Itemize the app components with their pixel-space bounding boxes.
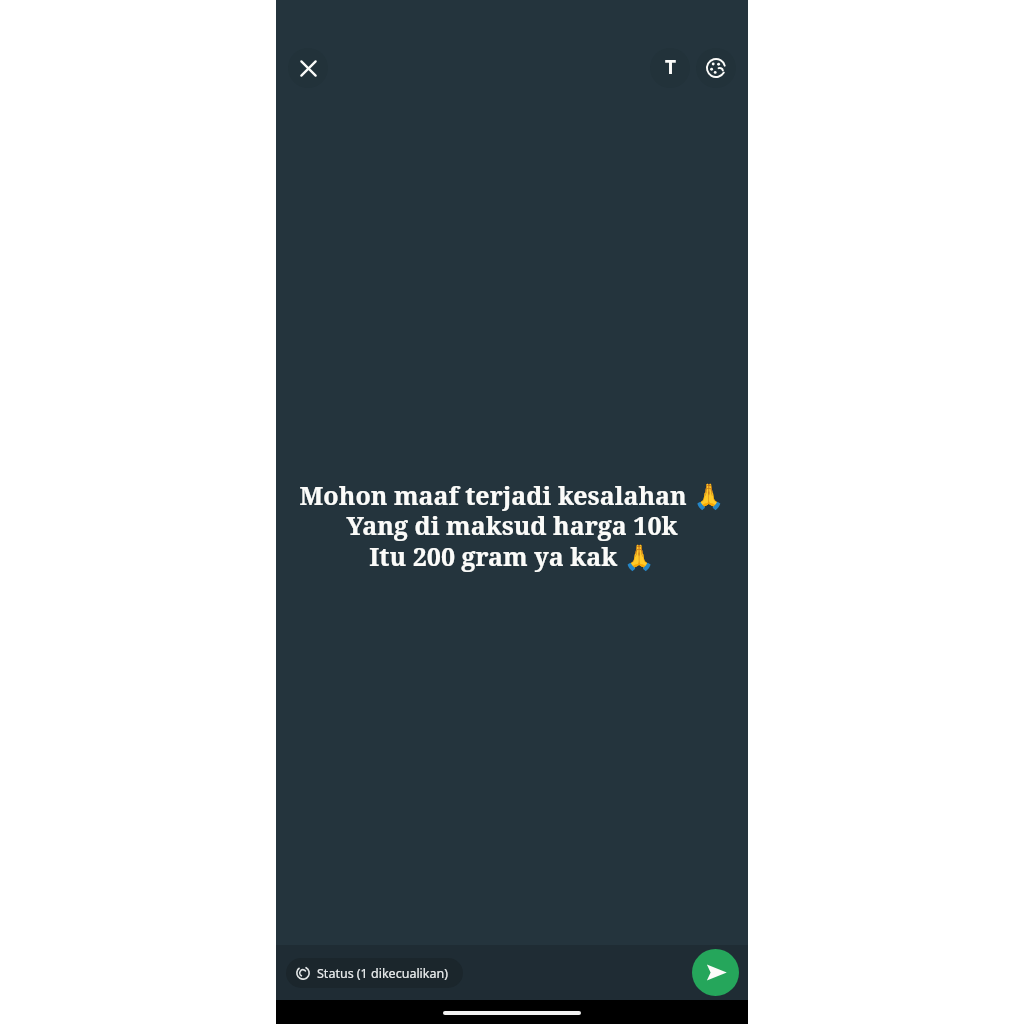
button[interactable]: Send bbox=[692, 949, 739, 996]
button[interactable]: Add text bbox=[650, 48, 690, 88]
staticText: Status (1 dikecualikan) bbox=[317, 965, 449, 982]
staticText: T bbox=[665, 54, 676, 80]
button[interactable]: Mohon maaf terjadi kesalahan 🙏 Yang di m… bbox=[276, 478, 748, 573]
button[interactable]: Status (1 dikecualikan) bbox=[286, 958, 463, 988]
staticText: Mohon maaf terjadi kesalahan 🙏 Yang di m… bbox=[290, 478, 734, 573]
button[interactable]: Draw bbox=[696, 48, 736, 88]
button[interactable]: Close bbox=[288, 48, 328, 88]
